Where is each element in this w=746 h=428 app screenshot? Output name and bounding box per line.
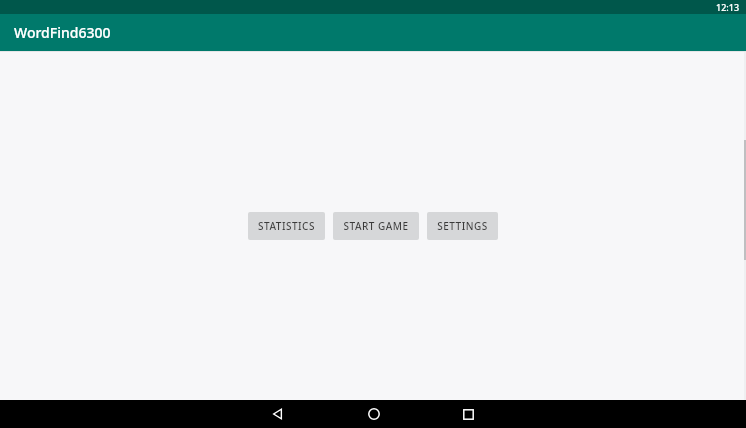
staticText: SETTINGS <box>437 219 488 233</box>
button[interactable]: STATISTICS <box>248 212 325 240</box>
staticText: STATISTICS <box>258 219 315 233</box>
button[interactable]: SETTINGS <box>427 212 498 240</box>
button[interactable]: Back <box>258 400 298 428</box>
staticText: START GAME <box>343 219 409 233</box>
button[interactable]: START GAME <box>333 212 419 240</box>
staticText: WordFind6300 <box>14 23 111 42</box>
button[interactable]: Home <box>354 400 394 428</box>
button[interactable]: Recent apps <box>448 400 488 428</box>
staticText: 12:13 <box>716 1 740 13</box>
